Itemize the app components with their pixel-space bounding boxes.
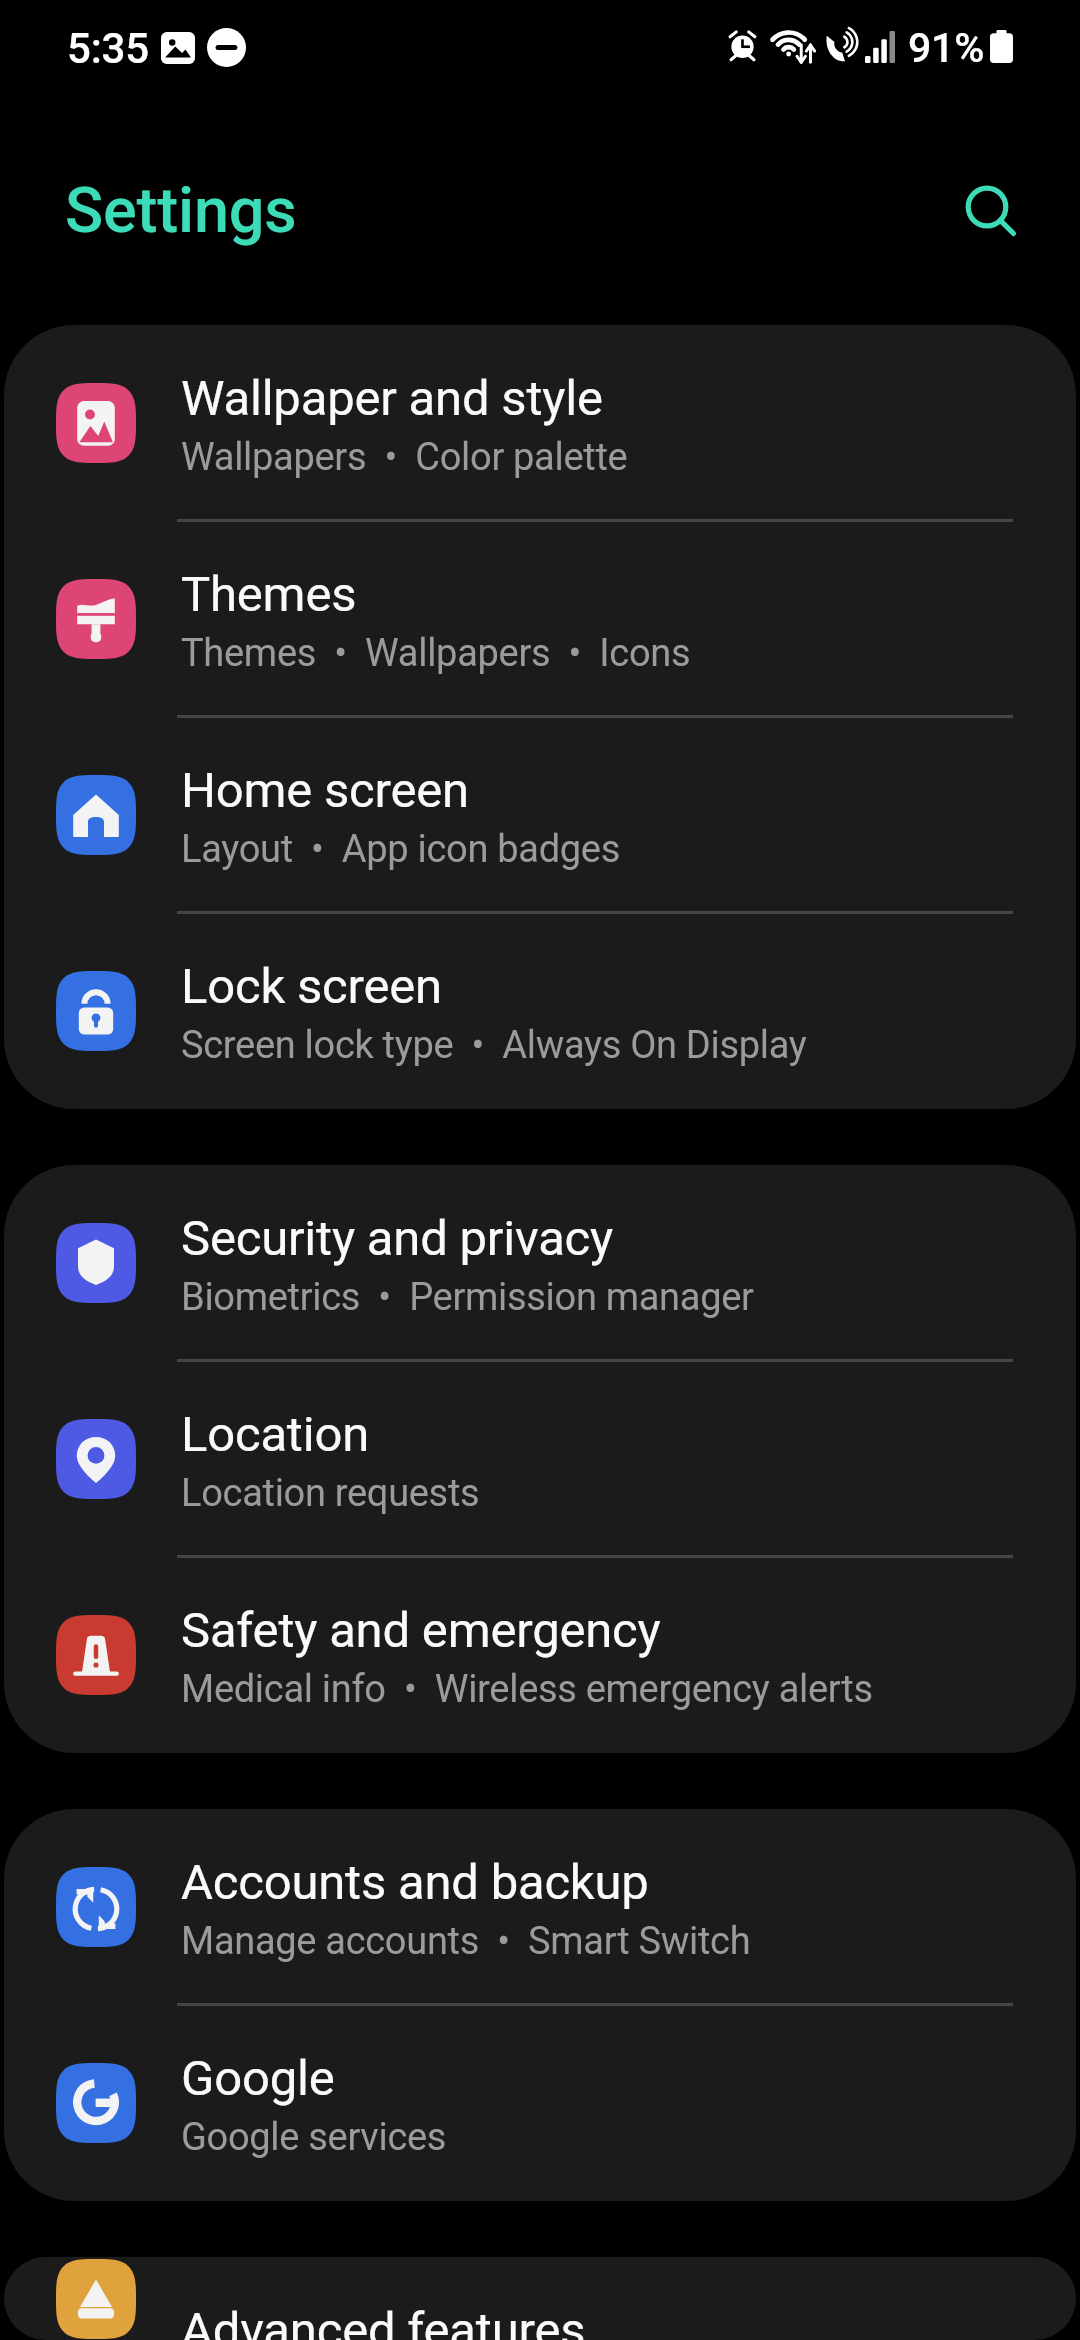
button[interactable]: Wallpaper and style [4,325,1076,521]
button[interactable]: Accounts and backup [4,1809,1076,2005]
button[interactable]: Security and privacy [4,1165,1076,1361]
staticText: Themes • Wallpapers • Icons [181,631,691,676]
staticText: Security and privacy [181,1210,614,1267]
staticText: Themes [181,566,357,623]
staticText: Advanced features [181,2302,586,2340]
staticText: Home screen [181,762,469,819]
staticText: Safety and emergency [181,1602,661,1659]
staticText: Wallpaper and style [181,370,603,427]
staticText: Google services [181,2115,447,2160]
button[interactable]: Search [947,167,1027,247]
staticText: Settings [65,174,297,248]
staticText: Location requests [181,1471,480,1516]
staticText: Wallpapers • Color palette [181,435,628,480]
button[interactable]: Themes [4,521,1076,717]
staticText: Medical info • Wireless emergency alerts [181,1667,873,1712]
staticText: Manage accounts • Smart Switch [181,1919,751,1964]
staticText: 91% [908,24,985,72]
staticText: Screen lock type • Always On Display [181,1023,807,1068]
button[interactable]: Home screen [4,717,1076,913]
staticText: Accounts and backup [181,1854,649,1911]
staticText: Biometrics • Permission manager [181,1275,754,1320]
staticText: Layout • App icon badges [181,827,620,872]
button[interactable]: Lock screen [4,913,1076,1109]
staticText: Lock screen [181,958,442,1015]
staticText: 5:35 [67,24,149,73]
button[interactable]: Location [4,1361,1076,1557]
button[interactable]: Google [4,2005,1076,2201]
button[interactable]: Advanced features [4,2257,1076,2340]
staticText: Location [181,1406,369,1463]
staticText: Google [181,2050,335,2107]
button[interactable]: Safety and emergency [4,1557,1076,1753]
